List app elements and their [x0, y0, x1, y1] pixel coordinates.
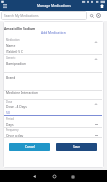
staticText: Days — [6, 122, 14, 126]
button[interactable]: Search — [88, 12, 95, 19]
staticText: Amoxicillin Sodium — [4, 26, 36, 30]
staticText: (Tablet) 5 C — [6, 49, 24, 53]
button[interactable]: Home — [99, 3, 105, 9]
staticText: Manage Medications — [37, 3, 71, 8]
staticText: Frequency — [6, 128, 19, 132]
staticText: Generic — [6, 56, 16, 60]
staticText: Dose - 4 Days — [6, 104, 27, 108]
staticText: Once a day — [6, 133, 24, 137]
staticText: Add Medication — [41, 30, 66, 34]
staticText: Search My Medications — [4, 14, 39, 18]
staticText: Name — [6, 43, 16, 47]
button[interactable]: Save — [56, 143, 97, 151]
staticText: Save — [73, 145, 80, 149]
button[interactable]: Back — [30, 172, 39, 181]
button[interactable]: Recents — [68, 172, 77, 181]
button[interactable]: Settings — [95, 12, 102, 19]
staticText: Cancel — [25, 145, 35, 149]
staticText: 50 — [6, 110, 10, 115]
staticText: Bamipradion — [6, 61, 27, 65]
staticText: Medicine Interaction — [6, 90, 38, 94]
staticText: Dose — [6, 100, 13, 104]
staticText: Medication — [6, 38, 20, 42]
button[interactable]: Search My Medications — [1, 11, 87, 20]
button[interactable]: Cancel — [9, 143, 50, 151]
staticText: Brand — [6, 75, 16, 79]
button[interactable]: Menu — [2, 3, 8, 9]
staticText: Period — [6, 117, 14, 121]
button[interactable]: Home — [50, 172, 59, 181]
